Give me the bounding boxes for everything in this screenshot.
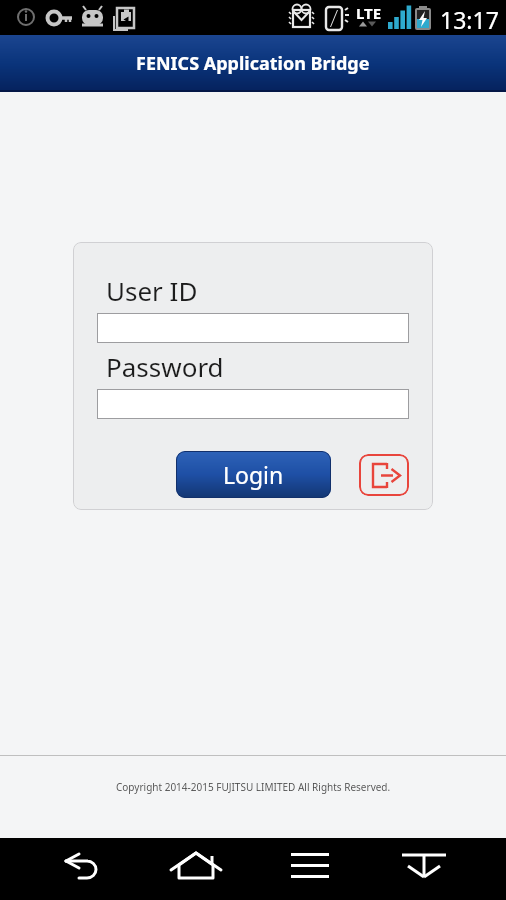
button[interactable] [253,838,367,893]
staticText: 13:17 [440,4,499,35]
staticText: Copyright 2014-2015 FUJITSU LIMITED All … [116,780,391,794]
button[interactable] [97,313,409,343]
button[interactable] [359,454,409,496]
staticText: FENICS Application Bridge [136,51,370,76]
staticText: Login [223,459,284,490]
button[interactable] [25,838,139,893]
staticText: User ID [106,273,198,308]
staticText: Password [106,349,224,384]
button[interactable] [367,838,481,893]
staticText: LTE [356,3,382,23]
button[interactable] [97,389,409,419]
button[interactable] [139,838,253,893]
button[interactable]: Login [176,451,331,498]
